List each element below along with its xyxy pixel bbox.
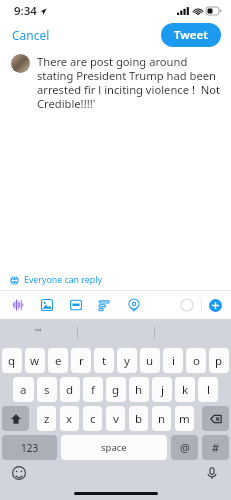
button[interactable]: h — [129, 377, 149, 402]
button[interactable]: v — [106, 406, 125, 431]
button[interactable]: i — [163, 348, 183, 373]
staticText: n — [158, 411, 166, 427]
staticText: 123 — [21, 441, 39, 455]
button[interactable]: m — [175, 406, 194, 431]
staticText: "" — [35, 327, 42, 338]
staticText: @ — [180, 440, 190, 455]
button[interactable]: Shift — [2, 406, 29, 431]
staticText: d — [66, 382, 74, 398]
staticText: k — [182, 382, 189, 398]
staticText: i — [172, 353, 175, 369]
staticText: # — [212, 440, 220, 455]
button[interactable]: @ — [171, 435, 198, 460]
button[interactable]: Dictation — [205, 466, 219, 480]
button[interactable]: k — [175, 377, 195, 402]
button[interactable]: j — [152, 377, 172, 402]
staticText: c — [90, 411, 96, 427]
staticText: m — [179, 411, 190, 427]
button[interactable]: w — [25, 348, 45, 373]
button[interactable]: q — [2, 348, 22, 373]
button[interactable]: Profile photo — [11, 54, 30, 73]
button[interactable]: z — [37, 406, 56, 431]
button[interactable]: GIF — [68, 297, 84, 313]
button[interactable]: "" — [0, 319, 77, 345]
button[interactable]: x — [60, 406, 79, 431]
button[interactable]: u — [140, 348, 160, 373]
button[interactable]: s — [37, 377, 57, 402]
button[interactable]: b — [129, 406, 148, 431]
button[interactable]: y — [117, 348, 137, 373]
button[interactable]: Everyone can reply — [0, 270, 231, 290]
button[interactable]: t — [94, 348, 114, 373]
button[interactable]: n — [152, 406, 171, 431]
button[interactable]: o — [186, 348, 206, 373]
staticText: 9:34 — [14, 3, 37, 19]
staticText: v — [113, 411, 119, 427]
button[interactable]: e — [48, 348, 68, 373]
staticText: a — [20, 382, 27, 398]
staticText: g — [112, 382, 120, 398]
staticText: p — [215, 353, 223, 369]
staticText: space — [101, 441, 127, 454]
button[interactable]: c — [83, 406, 102, 431]
button[interactable]: Backspace — [202, 406, 229, 431]
staticText: Cancel — [12, 27, 50, 43]
staticText: Tweet — [174, 27, 208, 43]
staticText: o — [193, 353, 200, 369]
staticText: r — [79, 353, 84, 369]
button[interactable]: a — [13, 377, 34, 402]
staticText: Everyone can reply — [24, 274, 102, 286]
staticText: There are post going around stating Pres… — [37, 54, 223, 111]
button[interactable]: Cancel — [0, 23, 58, 47]
button[interactable]: 123 — [2, 435, 57, 460]
staticText: w — [30, 353, 40, 369]
staticText: e — [55, 353, 62, 369]
button[interactable]: # — [202, 435, 229, 460]
staticText: x — [66, 411, 73, 427]
button[interactable]: Poll — [97, 297, 113, 313]
staticText: s — [44, 382, 50, 398]
staticText: h — [135, 382, 143, 398]
staticText: z — [44, 411, 50, 427]
staticText: j — [161, 382, 164, 398]
staticText: f — [91, 382, 95, 398]
button[interactable]: g — [106, 377, 126, 402]
button[interactable]: space — [61, 435, 167, 460]
staticText: q — [8, 353, 16, 369]
button[interactable]: l — [198, 377, 218, 402]
button[interactable]: f — [83, 377, 103, 402]
button[interactable]: Location — [126, 297, 142, 313]
button[interactable]: Add tweet — [209, 299, 222, 312]
button[interactable]: r — [71, 348, 91, 373]
button[interactable]: p — [209, 348, 229, 373]
button[interactable]: Emoji — [12, 466, 26, 480]
staticText: t — [102, 353, 107, 369]
staticText: u — [146, 353, 154, 369]
button[interactable]: Tweet — [161, 23, 221, 47]
staticText: y — [124, 353, 130, 369]
button[interactable]: Media — [39, 297, 55, 313]
staticText: b — [135, 411, 143, 427]
button[interactable]: There are post going around stating Pres… — [37, 54, 223, 111]
button[interactable]: Voice — [10, 297, 26, 313]
button[interactable]: d — [60, 377, 80, 402]
staticText: l — [207, 382, 210, 398]
button[interactable]: Character count — [179, 297, 195, 313]
